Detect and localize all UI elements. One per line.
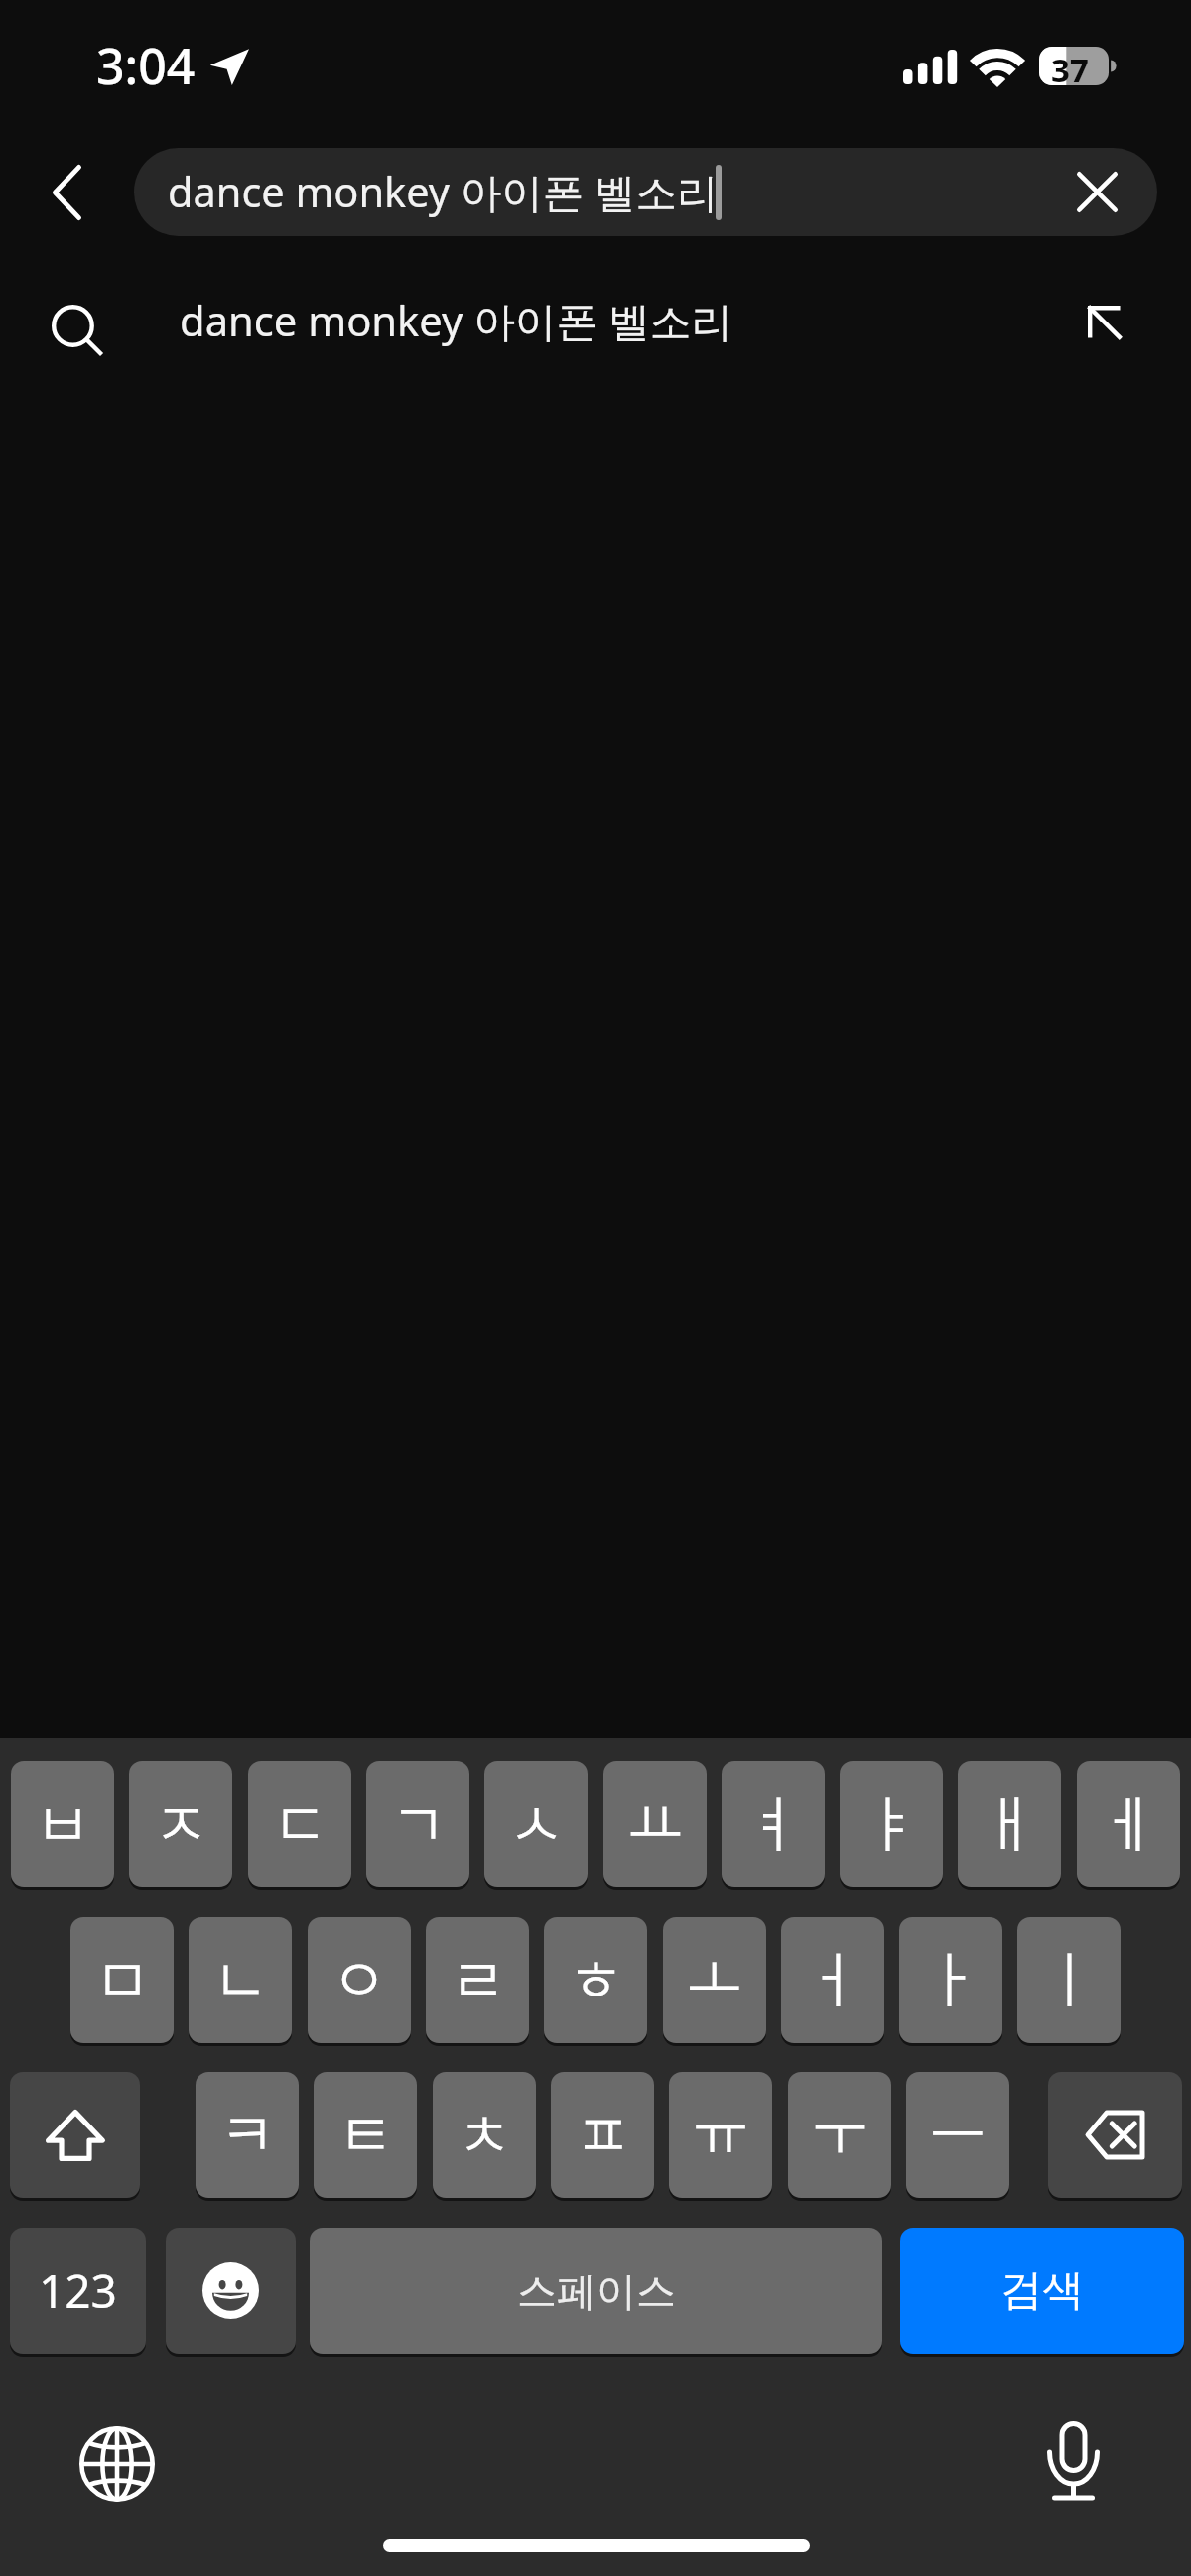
button[interactable]: ㅛ — [603, 1761, 707, 1887]
staticText: 37 — [1051, 48, 1089, 92]
staticText: ㅁ — [94, 1932, 150, 2018]
staticText: dance monkey 아이폰 벨소리 — [168, 164, 719, 220]
button[interactable]: ㅋ — [196, 2072, 299, 2198]
button[interactable]: Dictation — [1013, 2401, 1132, 2520]
staticText: ㄷ — [272, 1776, 328, 1863]
staticText: ㄴ — [212, 1932, 268, 2018]
staticText: ㅅ — [508, 1776, 564, 1863]
button[interactable]: ㅂ — [11, 1761, 114, 1887]
button[interactable]: Shift — [10, 2072, 140, 2198]
staticText: ㅇ — [331, 1932, 387, 2018]
staticText: ㅓ — [805, 1932, 860, 2018]
button[interactable]: ㅊ — [433, 2072, 536, 2198]
button[interactable]: ㅈ — [129, 1761, 232, 1887]
button[interactable]: ㅓ — [781, 1917, 884, 2043]
button[interactable]: 검색 — [900, 2228, 1184, 2354]
staticText: 검색 — [1000, 2264, 1084, 2317]
staticText: ㅗ — [687, 1932, 742, 2018]
button[interactable]: ㅜ — [788, 2072, 891, 2198]
staticText: ㅔ — [1101, 1776, 1156, 1863]
button[interactable]: ㄴ — [189, 1917, 292, 2043]
staticText: ㅂ — [35, 1776, 90, 1863]
staticText: ㅑ — [863, 1776, 919, 1863]
button[interactable]: ㅌ — [314, 2072, 417, 2198]
button[interactable]: Back — [14, 148, 119, 236]
staticText: 123 — [39, 2259, 117, 2322]
staticText: ㅈ — [153, 1776, 208, 1863]
staticText: dance monkey 아이폰 벨소리 — [180, 292, 733, 348]
button[interactable]: ㅣ — [1017, 1917, 1121, 2043]
staticText: ㅌ — [337, 2087, 393, 2173]
staticText: ㅡ — [930, 2087, 986, 2173]
staticText: ㅊ — [457, 2087, 512, 2173]
staticText: ㅠ — [693, 2087, 748, 2173]
button[interactable]: ㅕ — [722, 1761, 825, 1887]
button[interactable]: 123 — [10, 2228, 146, 2354]
button[interactable]: ㅗ — [663, 1917, 766, 2043]
staticText: ㅣ — [1041, 1932, 1097, 2018]
button[interactable]: ㅡ — [906, 2072, 1009, 2198]
button[interactable]: ㅐ — [958, 1761, 1061, 1887]
staticText: 스페이스 — [517, 2266, 676, 2316]
button[interactable]: ㄷ — [248, 1761, 351, 1887]
staticText: ㅕ — [745, 1776, 801, 1863]
button[interactable]: ㄱ — [366, 1761, 469, 1887]
button[interactable]: ㅍ — [551, 2072, 654, 2198]
button[interactable]: ㅇ — [308, 1917, 411, 2043]
staticText: ㅛ — [627, 1776, 683, 1863]
button[interactable]: ㅎ — [544, 1917, 647, 2043]
staticText: ㄹ — [450, 1932, 505, 2018]
button[interactable]: 스페이스 — [310, 2228, 882, 2354]
button[interactable]: Clear — [1052, 148, 1141, 236]
staticText: ㅍ — [575, 2087, 630, 2173]
staticText: ㅋ — [219, 2087, 275, 2173]
staticText: ㅎ — [568, 1932, 623, 2018]
button[interactable]: Change keyboard language — [58, 2404, 177, 2523]
staticText: ㅏ — [923, 1932, 979, 2018]
button[interactable]: Emoji — [166, 2228, 296, 2354]
button[interactable]: ㅑ — [840, 1761, 943, 1887]
button[interactable]: dance monkey 아이폰 벨소리 — [134, 148, 1157, 236]
button[interactable]: ㅏ — [899, 1917, 1002, 2043]
button[interactable]: dance monkey 아이폰 벨소리 — [0, 260, 1191, 389]
button[interactable]: Backspace — [1048, 2072, 1182, 2198]
button[interactable]: ㅠ — [669, 2072, 772, 2198]
staticText: ㄱ — [390, 1776, 446, 1863]
button[interactable]: ㅔ — [1077, 1761, 1180, 1887]
button[interactable]: ㄹ — [426, 1917, 529, 2043]
staticText: ㅜ — [812, 2087, 867, 2173]
button[interactable]: ㅁ — [70, 1917, 174, 2043]
staticText: 3:04 — [96, 32, 196, 99]
button[interactable]: ㅅ — [484, 1761, 588, 1887]
staticText: ㅐ — [982, 1776, 1037, 1863]
